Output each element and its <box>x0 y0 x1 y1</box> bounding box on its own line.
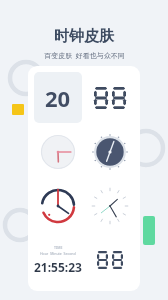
staticText: 21:55:23 <box>34 259 82 275</box>
button[interactable]: Segment clock 2 <box>86 235 134 285</box>
button[interactable]: Segment clock <box>86 72 134 123</box>
staticText: 20 <box>45 83 71 113</box>
staticText: TIME <box>54 245 63 250</box>
button[interactable]: Arc analog clock <box>34 181 82 231</box>
button[interactable]: Flip clock 20 <box>34 72 82 123</box>
button[interactable]: Simple analog clock <box>34 127 82 177</box>
button[interactable]: Minimal analog clock <box>86 181 134 231</box>
staticText: Hour Minute Second <box>40 251 76 256</box>
button[interactable]: Dark analog clock <box>86 127 134 177</box>
button[interactable]: Digital time 21:55:23 <box>34 235 82 285</box>
staticText: 时钟皮肤 <box>54 27 114 46</box>
staticText: 百变皮肤 好看也与众不同 <box>44 51 125 61</box>
